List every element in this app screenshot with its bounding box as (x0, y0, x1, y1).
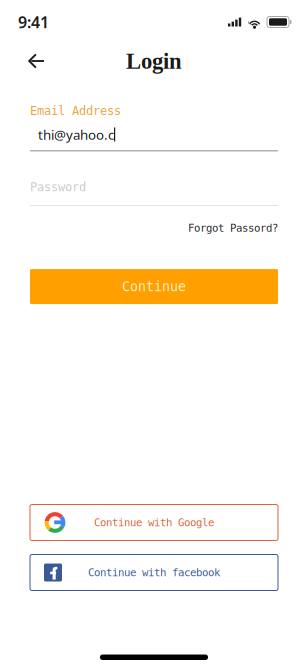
staticText: Login (126, 48, 182, 73)
button[interactable]: Forgot Passord? (188, 222, 278, 234)
staticText: thi@yahoo.c (38, 126, 114, 143)
staticText: Forgot Passord? (188, 222, 278, 234)
staticText: Email Address (30, 104, 121, 118)
button[interactable]: Continue with Google (30, 504, 278, 540)
button[interactable]: Continue with facebook (30, 554, 278, 590)
staticText: Continue with facebook (88, 566, 220, 578)
staticText: Continue with Google (94, 516, 214, 528)
staticText: 9:41 (18, 11, 49, 33)
staticText: Continue (122, 279, 186, 294)
staticText: Password (30, 180, 86, 194)
button[interactable]: Back (22, 47, 50, 75)
button[interactable]: Continue (30, 269, 278, 304)
